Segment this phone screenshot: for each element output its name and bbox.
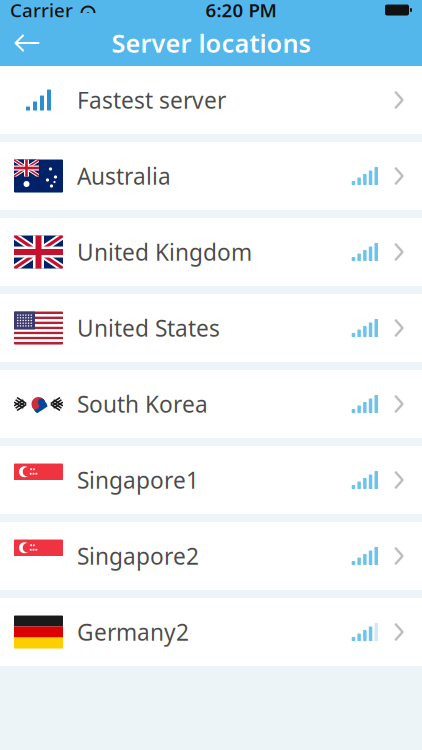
staticText: United Kingdom (77, 237, 252, 267)
button[interactable]: Singapore2 (0, 522, 422, 590)
button[interactable]: United Kingdom (0, 218, 422, 286)
button[interactable]: Singapore1 (0, 446, 422, 514)
staticText: Germany2 (77, 617, 189, 647)
button[interactable]: Back (0, 21, 54, 65)
button[interactable]: Australia (0, 142, 422, 210)
staticText: Carrier (10, 0, 73, 22)
button[interactable]: United States (0, 294, 422, 362)
staticText: Server locations (111, 26, 310, 60)
staticText: South Korea (77, 389, 208, 419)
staticText: Australia (77, 161, 171, 191)
button[interactable]: Fastest server (0, 66, 422, 134)
staticText: Fastest server (77, 85, 226, 115)
staticText: Singapore2 (77, 541, 199, 571)
staticText: United States (77, 313, 220, 343)
staticText: Singapore1 (77, 465, 199, 495)
button[interactable]: Germany2 (0, 598, 422, 666)
staticText: 6:20 PM (205, 0, 276, 22)
button[interactable]: South Korea (0, 370, 422, 438)
